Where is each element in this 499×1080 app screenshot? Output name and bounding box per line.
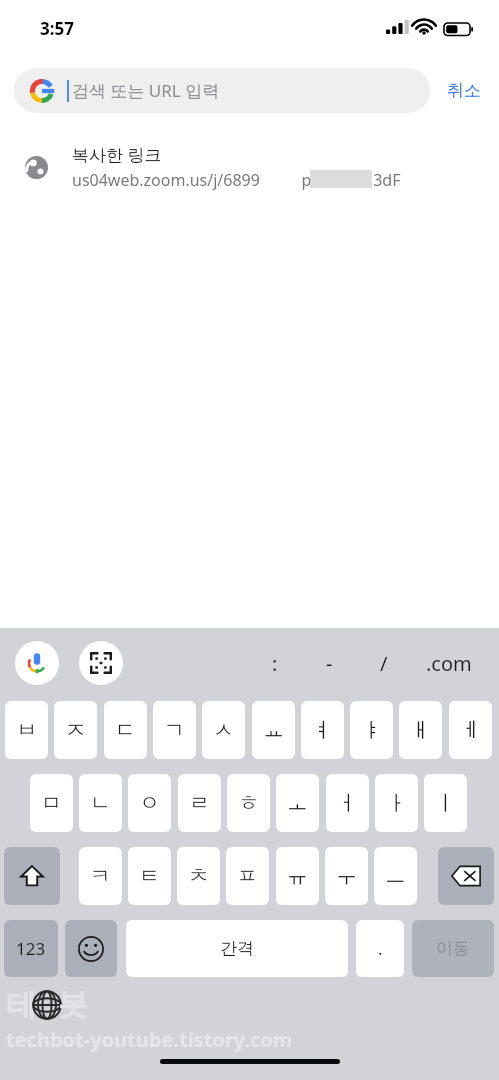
button[interactable]: ㅏ (375, 774, 418, 832)
button[interactable]: Voice input (15, 641, 59, 685)
staticText: ㄱ (164, 717, 185, 743)
button[interactable]: - (309, 642, 349, 684)
button[interactable]: ㅈ (54, 701, 97, 759)
button[interactable]: ㄷ (104, 701, 147, 759)
button[interactable]: ㅕ (301, 701, 344, 759)
button[interactable]: 검색 또는 URL 입력 (14, 68, 430, 113)
button[interactable]: : (255, 642, 295, 684)
button[interactable]: 복사한 링크 (0, 134, 499, 200)
staticText: .com (426, 650, 472, 677)
staticText: 테 (6, 986, 36, 1024)
staticText: 간격 (220, 938, 254, 959)
staticText: us04web.zoom.us/j/6899 pwd=Nkh3dF (72, 169, 401, 191)
button[interactable]: Backspace (438, 847, 494, 905)
button[interactable]: ㅛ (252, 701, 295, 759)
button[interactable]: ㅓ (326, 774, 369, 832)
button[interactable]: ㅐ (399, 701, 442, 759)
button[interactable]: Shift (4, 847, 60, 905)
staticText: : (272, 650, 278, 677)
staticText: ㅜ (336, 863, 357, 889)
staticText: techbot-youtube.tistory.com (6, 1026, 293, 1053)
button[interactable]: .com (415, 642, 483, 684)
staticText: ㅐ (410, 717, 431, 743)
staticText: 취소 (447, 80, 481, 101)
button[interactable]: ㅅ (202, 701, 245, 759)
staticText: ㅊ (188, 863, 209, 889)
staticText: 이동 (436, 938, 470, 959)
staticText: ㅠ (287, 863, 308, 889)
button[interactable]: / (364, 642, 404, 684)
button[interactable]: 123 (4, 920, 58, 977)
button[interactable]: ㅍ (226, 847, 269, 905)
button[interactable]: ㅋ (79, 847, 122, 905)
staticText: ㅡ (385, 863, 406, 889)
staticText: ㅓ (337, 790, 358, 816)
button[interactable]: ㅂ (5, 701, 48, 759)
staticText: ㅅ (213, 717, 234, 743)
button[interactable]: ㄱ (153, 701, 196, 759)
staticText: ㅕ (312, 717, 333, 743)
staticText: ㅑ (361, 717, 382, 743)
staticText: 123 (16, 937, 46, 960)
button[interactable]: ㄴ (79, 774, 122, 832)
staticText: / (380, 650, 388, 677)
staticText: ㅍ (237, 863, 258, 889)
staticText: ㅛ (263, 717, 284, 743)
button[interactable]: ㅎ (227, 774, 270, 832)
staticText: - (326, 650, 333, 677)
button[interactable]: . (356, 920, 404, 977)
staticText: ㅎ (238, 790, 259, 816)
staticText: 3:57 (40, 17, 74, 40)
button[interactable]: ㅗ (276, 774, 319, 832)
staticText: 검색 또는 URL 입력 (72, 79, 220, 102)
button[interactable]: ㄹ (178, 774, 221, 832)
staticText: ㄷ (115, 717, 136, 743)
staticText: ㅏ (386, 790, 407, 816)
button[interactable]: ㅠ (276, 847, 319, 905)
button[interactable]: Emoji (65, 920, 117, 977)
staticText: ㅈ (65, 717, 86, 743)
staticText: ㅋ (90, 863, 111, 889)
staticText: . (378, 937, 383, 960)
button[interactable]: ㅑ (350, 701, 393, 759)
button[interactable]: ㅣ (424, 774, 467, 832)
staticText: 봇 (58, 986, 88, 1024)
staticText: ㅇ (139, 790, 160, 816)
button[interactable]: ㅇ (128, 774, 171, 832)
staticText: ㄴ (90, 790, 111, 816)
button[interactable]: ㅌ (128, 847, 171, 905)
staticText: ㅁ (41, 790, 62, 816)
button[interactable]: 취소 (436, 68, 492, 113)
staticText: ㅣ (435, 790, 456, 816)
staticText: ㄹ (189, 790, 210, 816)
button[interactable]: ㅁ (30, 774, 73, 832)
staticText: 복사한 링크 (72, 143, 162, 166)
button[interactable]: ㅊ (177, 847, 220, 905)
button[interactable]: Scan (79, 641, 123, 685)
button[interactable]: 이동 (412, 920, 494, 977)
staticText: ㅂ (16, 717, 37, 743)
staticText: ㅔ (460, 717, 481, 743)
button[interactable]: ㅔ (449, 701, 492, 759)
button[interactable]: 간격 (126, 920, 348, 977)
button[interactable]: ㅡ (374, 847, 417, 905)
staticText: ㅌ (139, 863, 160, 889)
staticText: ㅗ (287, 790, 308, 816)
button[interactable]: ㅜ (325, 847, 368, 905)
